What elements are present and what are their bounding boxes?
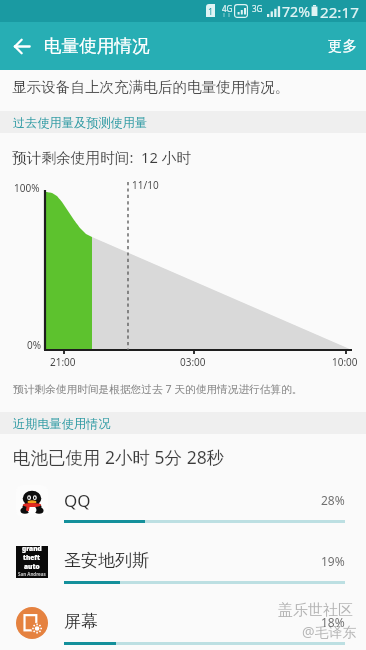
staticText: 预计剩余使用时间: 12 小时 bbox=[12, 147, 192, 167]
staticText: 圣安地列斯 bbox=[64, 550, 149, 571]
staticText: 18% bbox=[321, 614, 345, 630]
staticText: 屏幕 bbox=[64, 611, 98, 632]
staticText: QQ bbox=[64, 489, 91, 512]
staticText: 预计剩余使用时间是根据您过去 7 天的使用情况进行估算的。 bbox=[13, 382, 303, 397]
staticText: @毛译东 bbox=[302, 622, 357, 641]
staticText: 3G bbox=[252, 3, 263, 14]
staticText: 100% bbox=[14, 181, 40, 195]
staticText: 过去使用量及预测使用量 bbox=[13, 115, 148, 130]
staticText: 22:17 bbox=[320, 2, 359, 23]
staticText: 显示设备自上次充满电后的电量使用情况。 bbox=[12, 78, 290, 96]
button[interactable]: grand bbox=[0, 540, 366, 597]
staticText: San Andreas bbox=[18, 571, 46, 576]
staticText: auto bbox=[24, 562, 40, 571]
staticText: 盖乐世社区 bbox=[278, 601, 353, 620]
staticText: 1 bbox=[208, 5, 214, 17]
staticText: 10:00 bbox=[332, 355, 358, 369]
staticText: 电池已使用 2小时 5分 28秒 bbox=[13, 445, 225, 469]
staticText: 电量使用情况 bbox=[44, 35, 150, 57]
staticText: 4G bbox=[222, 3, 233, 14]
staticText: 更多 bbox=[328, 37, 358, 55]
button[interactable]: QQ bbox=[0, 479, 366, 536]
staticText: 21:00 bbox=[50, 355, 76, 369]
button[interactable]: 更多 bbox=[314, 22, 366, 70]
staticText: 近期电量使用情况 bbox=[13, 416, 111, 431]
staticText: 0% bbox=[27, 338, 42, 352]
staticText: 72% bbox=[282, 2, 311, 21]
button[interactable]: 屏幕 bbox=[0, 601, 366, 650]
staticText: 11/10 bbox=[132, 178, 159, 192]
staticText: 03:00 bbox=[180, 355, 206, 369]
button[interactable]: Back bbox=[0, 22, 44, 70]
staticText: theft bbox=[23, 553, 41, 562]
staticText: 19% bbox=[321, 553, 345, 569]
staticText: grand bbox=[22, 544, 42, 553]
staticText: 28% bbox=[321, 492, 345, 508]
